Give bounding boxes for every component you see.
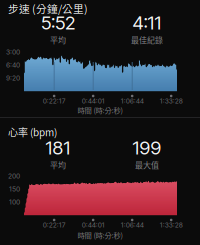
staticText: 0:22:17 (43, 97, 66, 105)
staticText: 最大值 (135, 159, 159, 171)
staticText: 150 (9, 185, 20, 193)
staticText: 時間 (時:分:秒) (77, 230, 122, 240)
staticText: 步速 (分鐘/公里) (8, 0, 88, 16)
staticText: 9:20 (6, 74, 20, 82)
staticText: 0:44:01 (82, 97, 105, 105)
staticText: 4:11 (132, 11, 161, 34)
button[interactable]: 步速 (分鐘/公里) (0, 0, 200, 117)
staticText: 5:52 (41, 11, 75, 34)
staticText: 平均 (50, 34, 66, 46)
staticText: 1:06:44 (121, 221, 144, 229)
staticText: 0:22:17 (43, 221, 66, 229)
staticText: 時間 (時:分:秒) (77, 105, 122, 115)
staticText: 0:44:01 (82, 221, 105, 229)
staticText: 心率 (bpm) (8, 125, 57, 139)
staticText: 3:00 (6, 48, 20, 56)
staticText: 200 (8, 172, 20, 180)
staticText: 6:40 (6, 61, 20, 69)
staticText: 1:33:28 (160, 97, 183, 105)
staticText: 181 (45, 136, 70, 159)
staticText: 平均 (50, 159, 66, 171)
button[interactable]: 心率 (bpm) (0, 118, 200, 245)
staticText: 1:33:28 (160, 221, 183, 229)
staticText: 199 (132, 136, 161, 159)
staticText: 最佳紀錄 (131, 34, 163, 46)
staticText: 1:06:44 (121, 97, 144, 105)
staticText: 100 (9, 198, 20, 206)
